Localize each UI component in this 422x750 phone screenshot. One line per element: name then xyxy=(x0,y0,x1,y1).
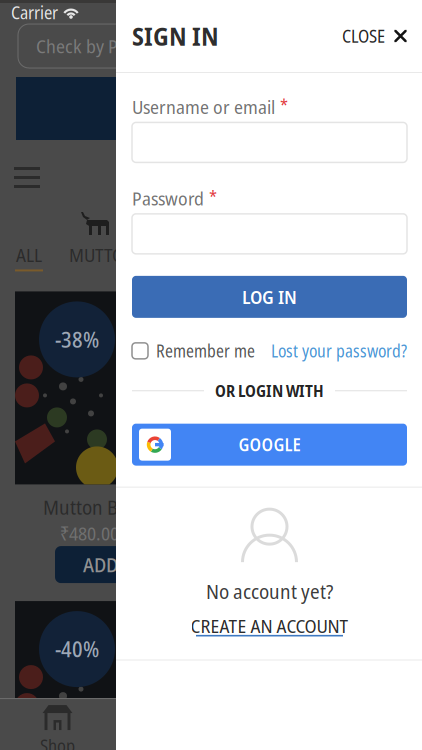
button[interactable]: Lost your password? xyxy=(271,339,407,363)
staticText: Password xyxy=(132,185,204,211)
button[interactable]: CREATE AN ACCOUNT xyxy=(190,605,348,636)
staticText: CREATE AN ACCOUNT xyxy=(190,613,348,639)
staticText: Carrier xyxy=(11,1,58,24)
staticText: Lost your password? xyxy=(271,339,407,363)
staticText: -38% xyxy=(55,325,99,354)
button[interactable]: ADD TO CART xyxy=(55,546,218,583)
staticText: -40% xyxy=(55,635,99,664)
staticText: ₹480.00 ₹ xyxy=(60,521,132,546)
staticText: MUTTON xyxy=(69,242,136,267)
staticText: Mutton Boneless xyxy=(43,493,180,521)
button[interactable]: CLOSE xyxy=(342,15,407,57)
staticText: CLOSE xyxy=(342,24,385,48)
staticText: SIGN IN xyxy=(132,19,219,53)
button[interactable]: Remember me xyxy=(132,339,255,363)
staticText: Check by Pincode xyxy=(36,33,169,59)
button[interactable]: LOG IN xyxy=(132,276,407,318)
staticText: * xyxy=(209,185,217,209)
staticText: ADD TO CART xyxy=(83,551,190,578)
staticText: Shop xyxy=(40,734,75,750)
staticText: Remember me xyxy=(156,339,255,363)
staticText: OR LOGIN WITH xyxy=(215,380,324,402)
staticText: ALL xyxy=(16,242,42,267)
staticText: Username or email xyxy=(132,94,275,119)
staticText: LOG IN xyxy=(242,284,297,309)
staticText: GOOGLE xyxy=(238,433,300,456)
button[interactable]: GOOGLE xyxy=(132,424,407,466)
staticText: No account yet? xyxy=(206,578,333,605)
button[interactable]: Shop xyxy=(0,699,115,750)
staticText: Only xyxy=(385,300,416,323)
staticText: * xyxy=(280,94,288,118)
